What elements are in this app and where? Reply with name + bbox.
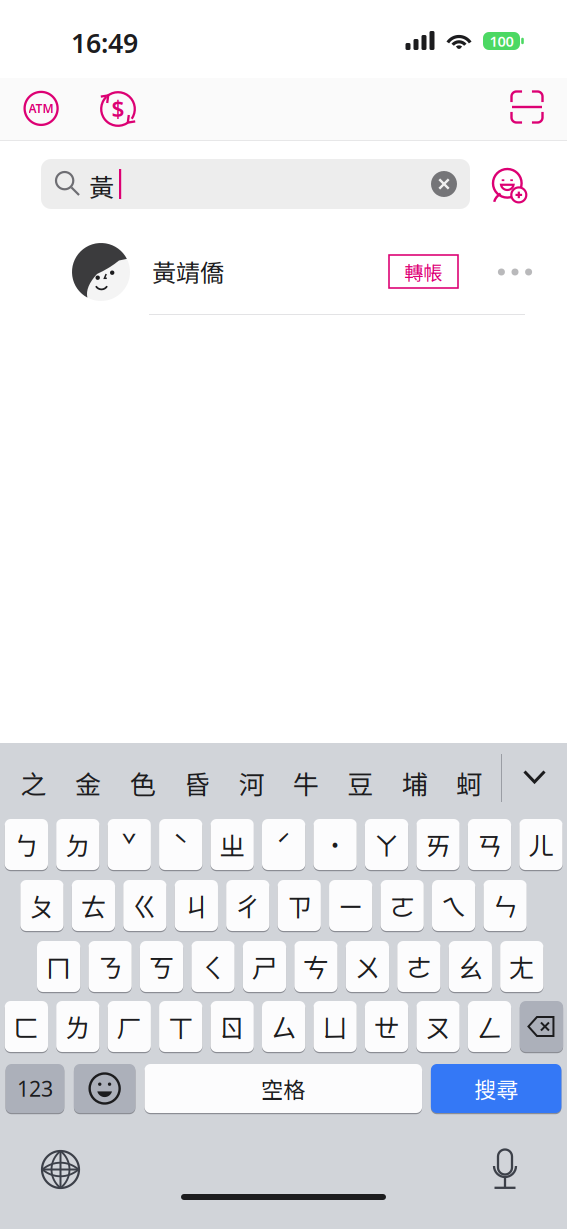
button[interactable]: ㄌ xyxy=(56,1001,99,1052)
button[interactable]: More options xyxy=(498,257,532,287)
button[interactable]: ㄤ xyxy=(500,941,543,992)
button[interactable]: 空格 xyxy=(144,1064,422,1113)
button[interactable]: ㄨ xyxy=(346,941,389,992)
staticText: ㄨ xyxy=(354,948,380,985)
staticText: ˇ xyxy=(121,826,137,863)
staticText: ㄇ xyxy=(46,948,72,985)
button[interactable]: 豆 xyxy=(337,753,384,813)
button[interactable]: 色 xyxy=(119,753,166,813)
button[interactable]: Next keyboard xyxy=(42,1151,79,1188)
button[interactable]: 蚵 xyxy=(446,753,493,813)
button[interactable]: ㄓ xyxy=(210,819,254,870)
staticText: 埔 xyxy=(402,764,428,802)
button[interactable]: ㄘ xyxy=(294,941,338,992)
button[interactable]: ㄗ xyxy=(278,880,321,931)
button[interactable]: ㄟ xyxy=(432,880,475,931)
staticText: ㄑ xyxy=(200,948,226,985)
button[interactable]: ㄎ xyxy=(140,941,183,992)
staticText: 金 xyxy=(75,764,101,802)
button[interactable]: ㄅ xyxy=(5,819,48,870)
button[interactable]: ㄆ xyxy=(20,880,64,931)
staticText: ㄍ xyxy=(132,887,158,924)
button[interactable]: 金 xyxy=(64,753,111,813)
staticText: ㄚ xyxy=(374,826,400,863)
staticText: ㄕ xyxy=(251,948,277,985)
button[interactable]: ㄣ xyxy=(483,880,527,931)
staticText: ㄗ xyxy=(286,887,312,924)
staticText: ㄠ xyxy=(457,948,483,985)
button[interactable]: ㄋ xyxy=(88,941,132,992)
button[interactable]: Scan QR code xyxy=(511,91,542,122)
button[interactable]: 之 xyxy=(10,753,57,813)
button[interactable]: Emoji xyxy=(74,1064,135,1113)
button[interactable]: ㄖ xyxy=(210,1001,254,1052)
staticText: ㄙ xyxy=(271,1008,297,1045)
button[interactable]: ㄠ xyxy=(449,941,492,992)
button[interactable]: ㄑ xyxy=(191,941,235,992)
staticText: ㄡ xyxy=(425,1008,451,1045)
button[interactable]: ㄝ xyxy=(365,1001,408,1052)
staticText: $ xyxy=(111,94,124,124)
staticText: ㄖ xyxy=(219,1008,245,1045)
staticText: ㄥ xyxy=(476,1008,502,1045)
button[interactable]: ㄍ xyxy=(123,880,166,931)
button[interactable]: ㄜ xyxy=(397,941,440,992)
button[interactable]: Dictation xyxy=(492,1149,518,1190)
staticText: ㄉ xyxy=(65,826,91,863)
staticText: ㄝ xyxy=(374,1008,400,1045)
button[interactable]: 123 xyxy=(6,1064,64,1113)
button[interactable]: ㄚ xyxy=(365,819,408,870)
button[interactable]: ㄉ xyxy=(56,819,99,870)
staticText: ATM xyxy=(29,100,54,116)
staticText: ㄓ xyxy=(219,826,245,863)
button[interactable]: ˋ xyxy=(159,819,202,870)
staticText: ㄜ xyxy=(406,948,432,985)
staticText: ㄎ xyxy=(149,948,175,985)
staticText: ㄘ xyxy=(303,948,329,985)
button[interactable]: Hide keyboard xyxy=(523,770,546,784)
button[interactable]: ATM xyxy=(25,92,58,125)
button[interactable]: ㄧ xyxy=(329,880,372,931)
button[interactable]: Add friend xyxy=(493,169,527,203)
button[interactable]: ㄛ xyxy=(380,880,424,931)
button[interactable]: Currency exchange xyxy=(100,91,136,127)
staticText: ㄈ xyxy=(13,1008,39,1045)
button[interactable]: 搜尋 xyxy=(431,1064,561,1113)
staticText: 昏 xyxy=(184,764,210,802)
staticText: ˊ xyxy=(276,826,292,863)
button[interactable]: ㄥ xyxy=(468,1001,511,1052)
button[interactable]: ㄞ xyxy=(416,819,460,870)
button[interactable]: ㄈ xyxy=(5,1001,48,1052)
button[interactable]: ˇ xyxy=(108,819,151,870)
button[interactable]: 昏 xyxy=(173,753,220,813)
button[interactable]: ㄒ xyxy=(159,1001,202,1052)
button[interactable]: ˊ xyxy=(262,819,305,870)
button[interactable]: ㄐ xyxy=(175,880,218,931)
button[interactable]: ㄙ xyxy=(262,1001,305,1052)
button[interactable]: 埔 xyxy=(391,753,438,813)
staticText: 轉帳 xyxy=(404,258,442,285)
button[interactable]: 牛 xyxy=(282,753,329,813)
button[interactable]: ㄢ xyxy=(468,819,511,870)
staticText: 蚵 xyxy=(456,764,482,802)
staticText: 搜尋 xyxy=(474,1073,518,1104)
staticText: 黃靖僑 xyxy=(152,254,224,289)
button[interactable]: ㄊ xyxy=(72,880,115,931)
button[interactable]: 轉帳 xyxy=(389,255,458,288)
staticText: ㄆ xyxy=(29,887,55,924)
button[interactable]: ㄔ xyxy=(226,880,269,931)
staticText: 空格 xyxy=(261,1073,305,1104)
button[interactable]: Delete xyxy=(520,1001,563,1052)
button[interactable]: ˙ xyxy=(313,819,357,870)
button[interactable]: ㄕ xyxy=(243,941,286,992)
button[interactable]: ㄇ xyxy=(37,941,80,992)
staticText: ㄟ xyxy=(441,887,467,924)
staticText: 123 xyxy=(17,1074,53,1103)
button[interactable]: ㄡ xyxy=(416,1001,460,1052)
button[interactable]: 河 xyxy=(228,753,275,813)
button[interactable]: ㄦ xyxy=(519,819,563,870)
button[interactable]: ㄩ xyxy=(313,1001,357,1052)
staticText: 色 xyxy=(129,764,155,802)
button[interactable]: Clear search xyxy=(431,171,457,197)
button[interactable]: ㄏ xyxy=(108,1001,151,1052)
